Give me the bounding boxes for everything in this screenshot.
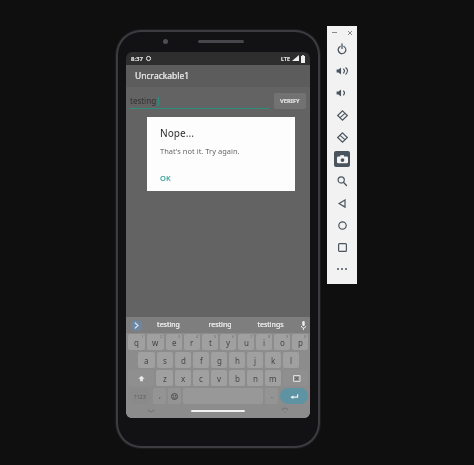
staticText: 4 [196, 334, 199, 339]
staticText: 9 [286, 334, 289, 339]
button[interactable]: o [274, 334, 290, 350]
staticText: q [134, 337, 139, 348]
button[interactable]: p [292, 334, 308, 350]
staticText: g [217, 355, 222, 366]
staticText: w [152, 337, 159, 348]
button[interactable]: v [211, 370, 227, 386]
staticText: n [253, 373, 258, 384]
button[interactable]: f [193, 352, 209, 368]
button[interactable]: Emoji [168, 388, 181, 404]
staticText: LTE [281, 55, 290, 62]
staticText: That's not it. Try again. [160, 146, 240, 156]
button[interactable]: m [265, 370, 281, 386]
button[interactable]: i [256, 334, 272, 350]
staticText: ?123 [134, 393, 146, 400]
button[interactable]: d [175, 352, 191, 368]
button[interactable]: Shift [128, 370, 154, 386]
button[interactable]: g [211, 352, 227, 368]
button[interactable]: Rotate right [327, 126, 357, 148]
staticText: testing [157, 320, 180, 330]
staticText: i [263, 337, 266, 348]
button[interactable]: VERIFY [274, 93, 306, 109]
button[interactable]: w [147, 334, 164, 350]
button[interactable]: testing [142, 317, 194, 333]
staticText: 5 [214, 334, 217, 339]
staticText: p [298, 337, 303, 348]
button[interactable]: Enter [280, 388, 308, 404]
button[interactable]: Zoom [327, 170, 357, 192]
staticText: resting [208, 320, 232, 330]
button[interactable]: k [265, 352, 281, 368]
button[interactable]: Overview [327, 236, 357, 258]
staticText: 8 [268, 334, 271, 339]
staticText: j [254, 355, 257, 366]
button[interactable]: Minimize [330, 28, 339, 37]
staticText: Uncrackable1 [135, 70, 190, 82]
staticText: 7 [250, 334, 253, 339]
button[interactable]: q [128, 334, 145, 350]
staticText: v [217, 373, 222, 384]
staticText: a [144, 355, 149, 366]
button[interactable]: t [202, 334, 218, 350]
staticText: z [163, 373, 167, 384]
button[interactable]: x [175, 370, 191, 386]
staticText: r [190, 337, 194, 348]
staticText: b [235, 373, 240, 384]
staticText: y [226, 337, 231, 348]
button[interactable]: Home [327, 214, 357, 236]
staticText: testing [130, 95, 157, 106]
staticText: 3 [178, 334, 181, 339]
staticText: 8:37 [131, 55, 143, 63]
staticText: OK [160, 173, 171, 183]
button[interactable]: ?123 [128, 388, 151, 404]
button[interactable]: Back [327, 192, 357, 214]
button[interactable]: h [229, 352, 245, 368]
button[interactable]: Expand suggestions [131, 320, 142, 331]
button[interactable]: , [153, 388, 166, 404]
staticText: f [200, 355, 203, 366]
button[interactable]: l [283, 352, 299, 368]
staticText: testings [257, 320, 284, 330]
button[interactable]: u [238, 334, 254, 350]
staticText: s [163, 355, 167, 366]
staticText: 0 [304, 334, 307, 339]
staticText: u [244, 337, 249, 348]
staticText: e [172, 337, 177, 348]
button[interactable]: a [138, 352, 155, 368]
button[interactable]: e [166, 334, 182, 350]
staticText: x [181, 373, 186, 384]
button[interactable]: Power [327, 38, 357, 60]
button[interactable]: z [156, 370, 173, 386]
staticText: c [199, 373, 203, 384]
staticText: t [209, 337, 212, 348]
button[interactable]: OK [154, 170, 177, 186]
staticText: VERIFY [280, 97, 300, 105]
button[interactable]: y [220, 334, 236, 350]
staticText: . [271, 391, 273, 401]
staticText: l [290, 355, 293, 366]
button[interactable]: s [157, 352, 173, 368]
button[interactable]: Backspace [283, 370, 308, 386]
button[interactable]: Volume up [327, 60, 357, 82]
staticText: 6 [232, 334, 235, 339]
button[interactable]: Volume down [327, 82, 357, 104]
button[interactable]: More [327, 258, 357, 280]
staticText: o [280, 337, 285, 348]
button[interactable]: testings [245, 317, 296, 333]
staticText: k [271, 355, 276, 366]
button[interactable]: testing [130, 95, 269, 109]
button[interactable]: c [193, 370, 209, 386]
button[interactable]: b [229, 370, 245, 386]
staticText: Nope... [160, 126, 194, 140]
button[interactable]: r [184, 334, 200, 350]
button[interactable]: Voice input [296, 317, 310, 333]
button[interactable]: Take screenshot [327, 148, 357, 170]
button[interactable]: Close [345, 28, 354, 37]
button[interactable]: j [247, 352, 263, 368]
button[interactable]: Rotate left [327, 104, 357, 126]
button[interactable]: n [247, 370, 263, 386]
button[interactable]: resting [194, 317, 245, 333]
staticText: 1 [141, 334, 144, 339]
